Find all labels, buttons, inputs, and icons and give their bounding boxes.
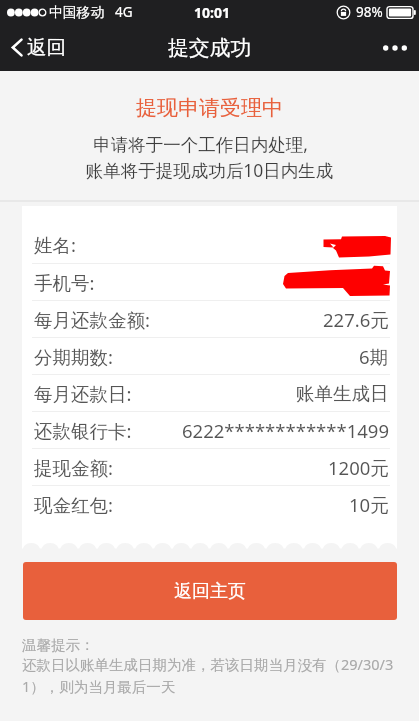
staticText: 提现金额: — [34, 455, 113, 480]
button[interactable]: 返回 — [0, 26, 80, 69]
staticText: 1200元 — [328, 455, 389, 480]
staticText: 手机号: — [34, 270, 95, 295]
staticText: 10元 — [349, 492, 389, 517]
staticText: 4G — [115, 3, 133, 21]
staticText: 中国移动 — [49, 4, 105, 21]
staticText: 6期 — [359, 344, 389, 369]
staticText: 申请将于一个工作日内处理, — [0, 132, 410, 156]
staticText: 每月还款日: — [34, 381, 132, 406]
staticText: 还款银行卡: — [34, 418, 132, 443]
staticText: 温馨提示： — [22, 636, 95, 654]
staticText: 每月还款金额: — [34, 307, 150, 332]
staticText: 227.6元 — [323, 307, 389, 332]
staticText: 10:01 — [194, 3, 230, 22]
staticText: 返回主页 — [174, 580, 246, 603]
staticText: 98% — [356, 3, 383, 21]
staticText: 姓名: — [34, 232, 76, 257]
staticText: 提交成功 — [168, 35, 252, 61]
staticText: 账单将于提现成功后10日内生成 — [0, 158, 419, 182]
staticText: 分期期数: — [34, 344, 113, 369]
staticText: 6222************1499 — [182, 418, 389, 443]
staticText: 账单生成日 — [296, 382, 389, 405]
staticText: 提现申请受理中 — [0, 95, 419, 121]
button[interactable]: More options — [371, 30, 419, 66]
staticText: 还款日以账单生成日期为准，若该日期当月没有（29/30/3 1），则为当月最后一… — [22, 654, 394, 696]
staticText: 返回 — [27, 35, 66, 60]
staticText: 现金红包: — [34, 492, 113, 517]
button[interactable]: 返回主页 — [23, 562, 397, 620]
